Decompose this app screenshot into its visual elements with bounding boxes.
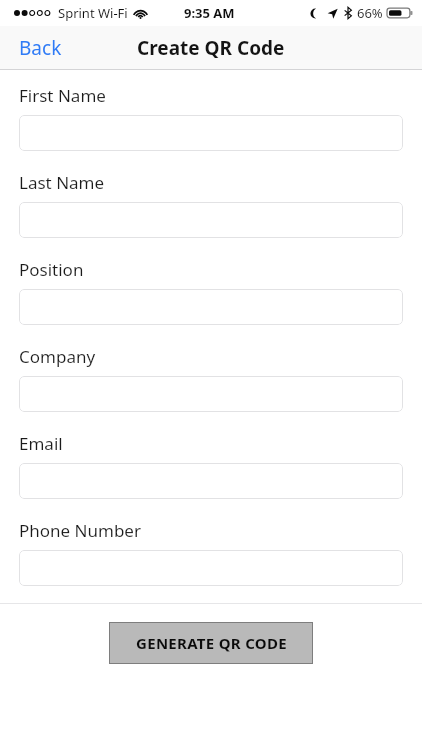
staticText: Sprint Wi-Fi — [58, 4, 128, 22]
button[interactable]: GENERATE QR CODE — [109, 622, 313, 664]
staticText: Company — [19, 345, 96, 368]
staticText: Create QR Code — [137, 35, 285, 61]
staticText: Back — [19, 35, 62, 61]
staticText: First Name — [19, 84, 106, 107]
staticText: 66% — [357, 4, 383, 22]
button[interactable]: Back — [0, 29, 76, 67]
staticText: 9:35 AM — [184, 4, 235, 22]
button[interactable]: Phone Number — [19, 550, 403, 586]
button[interactable]: Position — [19, 289, 403, 325]
staticText: GENERATE QR CODE — [136, 633, 287, 653]
button[interactable]: Email — [19, 463, 403, 499]
staticText: Position — [19, 258, 84, 281]
staticText: Phone Number — [19, 519, 141, 542]
button[interactable]: Company — [19, 376, 403, 412]
button[interactable]: Last Name — [19, 202, 403, 238]
staticText: Last Name — [19, 171, 105, 194]
staticText: Email — [19, 432, 63, 455]
button[interactable]: First Name — [19, 115, 403, 151]
